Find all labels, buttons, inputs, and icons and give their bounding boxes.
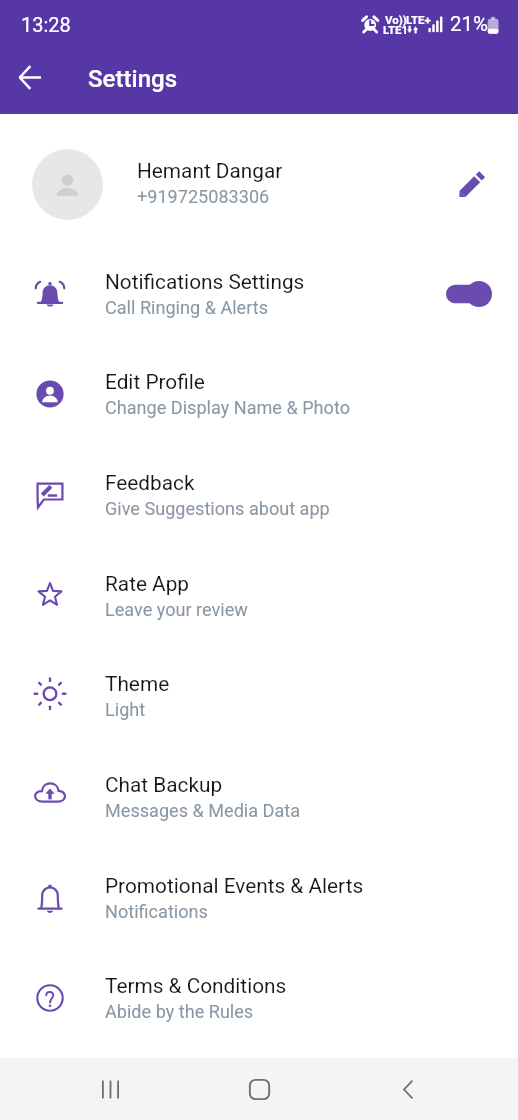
- staticText: Light: [105, 699, 146, 720]
- button[interactable]: Feedback: [0, 446, 518, 546]
- button[interactable]: Theme: [0, 647, 518, 747]
- button[interactable]: Terms & Conditions: [0, 949, 518, 1049]
- button[interactable]: Edit Profile: [0, 345, 518, 445]
- staticText: Change Display Name & Photo: [105, 397, 350, 418]
- staticText: Terms & Conditions: [105, 974, 287, 998]
- staticText: Promotional Events & Alerts: [105, 874, 364, 898]
- staticText: LTE1: [383, 23, 409, 36]
- staticText: Leave your review: [105, 599, 248, 620]
- button[interactable]: Edit profile: [452, 166, 492, 206]
- button[interactable]: Promotional Events & Alerts: [0, 849, 518, 949]
- staticText: Theme: [105, 672, 170, 696]
- staticText: LTE+: [406, 13, 431, 26]
- staticText: Rate App: [105, 572, 190, 596]
- button[interactable]: Hemant Dangar: [0, 135, 518, 239]
- staticText: Settings: [88, 65, 178, 93]
- staticText: Give Suggestions about app: [105, 498, 330, 519]
- staticText: 13:28: [21, 13, 71, 36]
- button[interactable]: Back: [13, 60, 48, 95]
- button[interactable]: Notifications Settings: [0, 245, 518, 345]
- staticText: Hemant Dangar: [137, 159, 283, 183]
- button[interactable]: Toggle notifications: [446, 281, 492, 307]
- button[interactable]: Rate App: [0, 547, 518, 647]
- staticText: Vo)): [385, 13, 407, 26]
- staticText: Edit Profile: [105, 370, 205, 394]
- staticText: Notifications Settings: [105, 270, 305, 294]
- staticText: Chat Backup: [105, 773, 223, 797]
- staticText: Abide by the Rules: [105, 1001, 254, 1022]
- staticText: Call Ringing & Alerts: [105, 297, 269, 318]
- staticText: Messages & Media Data: [105, 800, 301, 821]
- staticText: Notifications: [105, 901, 208, 922]
- button[interactable]: Recent apps: [68, 1058, 153, 1120]
- button[interactable]: Home: [217, 1058, 302, 1120]
- button[interactable]: Back: [365, 1058, 450, 1120]
- staticText: 21%: [450, 12, 489, 36]
- button[interactable]: Chat Backup: [0, 748, 518, 848]
- staticText: Feedback: [105, 471, 195, 495]
- staticText: +919725083306: [137, 186, 270, 207]
